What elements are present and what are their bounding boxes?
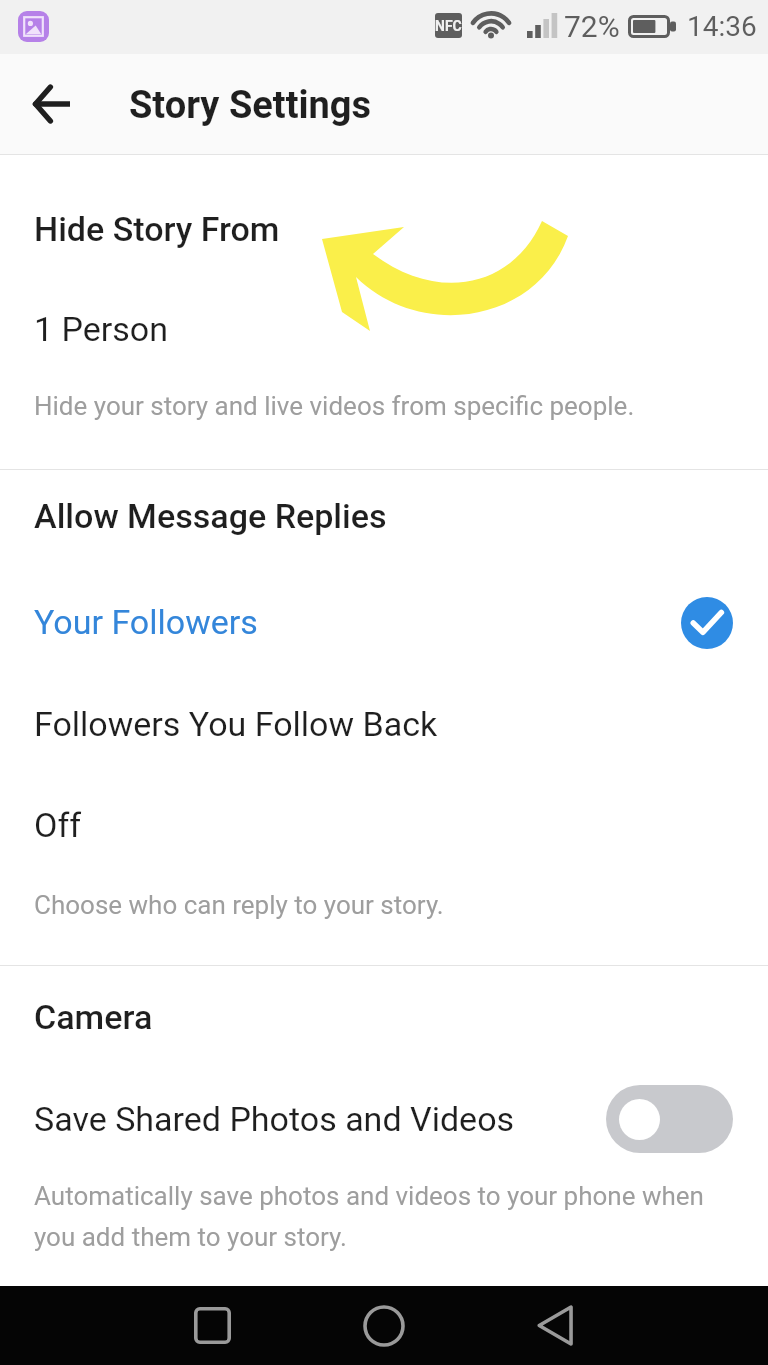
staticText: NFC — [435, 18, 462, 34]
staticText: 1 Person — [34, 309, 169, 349]
staticText: Off — [34, 805, 82, 845]
staticText: Camera — [34, 997, 153, 1037]
staticText: 72% — [564, 9, 620, 44]
staticText: Hide Story From — [34, 209, 280, 249]
staticText: Your Followers — [34, 602, 258, 642]
staticText: Automatically save photos and videos to … — [34, 1181, 704, 1253]
staticText: Followers You Follow Back — [34, 704, 438, 744]
staticText: 14:36 — [687, 10, 757, 43]
staticText: Story Settings — [129, 83, 372, 128]
button[interactable]: Save Shared Photos and Videos — [0, 1080, 768, 1164]
staticText: Save Shared Photos and Videos — [34, 1099, 515, 1139]
button[interactable]: Save shared photos and videos — [606, 1085, 733, 1153]
staticText: Choose who can reply to your story. — [34, 890, 444, 920]
staticText: Hide your story and live videos from spe… — [34, 391, 635, 421]
staticText: Allow Message Replies — [34, 496, 387, 536]
button[interactable]: 1 Person — [0, 290, 768, 370]
button[interactable]: Back — [515, 1286, 595, 1365]
button[interactable]: Recent apps — [172, 1286, 252, 1365]
button[interactable]: Back — [16, 69, 86, 139]
button[interactable]: Followers You Follow Back — [0, 685, 768, 765]
button[interactable]: Off — [0, 786, 768, 866]
button[interactable]: Home — [344, 1286, 424, 1365]
button[interactable]: Your Followers — [0, 583, 768, 663]
